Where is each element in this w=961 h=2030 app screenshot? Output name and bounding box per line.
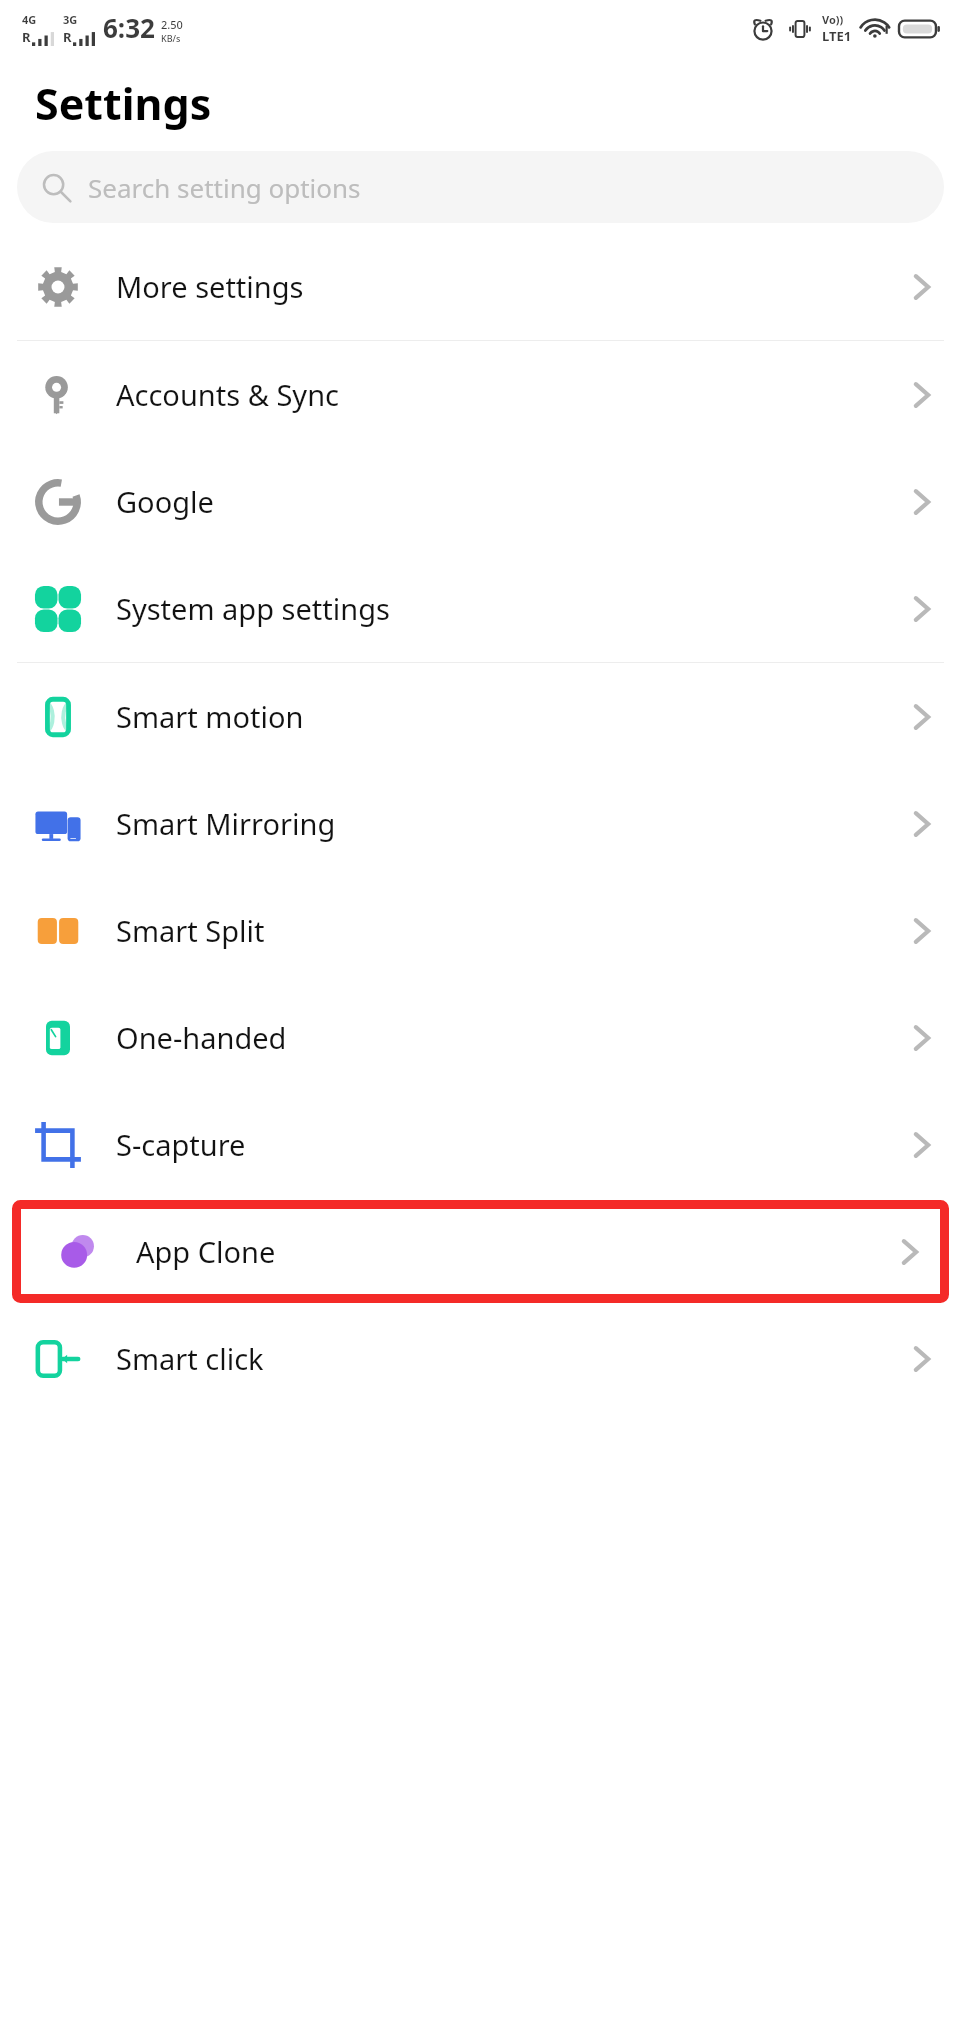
button[interactable]: More settings — [0, 233, 961, 340]
staticText: R — [63, 28, 72, 46]
staticText: Vo)) — [822, 12, 844, 27]
staticText: 4G — [22, 12, 37, 27]
staticText: Search setting options — [88, 170, 361, 205]
staticText: Smart Mirroring — [116, 804, 911, 843]
button[interactable]: Google — [0, 448, 961, 555]
staticText: Accounts & Sync — [116, 375, 911, 414]
staticText: 2.50 — [161, 17, 183, 32]
button[interactable]: Accounts & Sync — [0, 341, 961, 448]
staticText: System app settings — [116, 589, 911, 628]
button[interactable]: S-capture — [0, 1091, 961, 1198]
staticText: More settings — [116, 267, 911, 306]
staticText: 3G — [63, 12, 78, 27]
staticText: One-handed — [116, 1018, 911, 1057]
staticText: R — [22, 28, 31, 46]
staticText: App Clone — [136, 1232, 899, 1271]
staticText: Settings — [35, 74, 212, 133]
staticText: Smart click — [116, 1339, 911, 1378]
staticText: KB/s — [161, 32, 181, 44]
staticText: 6:32 — [103, 10, 155, 45]
staticText: Smart Split — [116, 911, 911, 950]
button[interactable]: Smart motion — [0, 663, 961, 770]
staticText: LTE1 — [822, 27, 852, 45]
button[interactable]: Smart Split — [0, 877, 961, 984]
staticText: Google — [116, 482, 911, 521]
staticText: Smart motion — [116, 697, 911, 736]
button[interactable]: Smart click — [0, 1305, 961, 1412]
button[interactable]: Search setting options — [17, 151, 944, 223]
button[interactable]: App Clone — [20, 1200, 949, 1303]
button[interactable]: One-handed — [0, 984, 961, 1091]
button[interactable]: Smart Mirroring — [0, 770, 961, 877]
staticText: S-capture — [116, 1125, 911, 1164]
button[interactable]: System app settings — [0, 555, 961, 662]
